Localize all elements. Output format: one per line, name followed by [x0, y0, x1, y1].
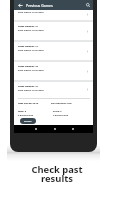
button[interactable]: Home [52, 126, 58, 132]
staticText: Previous Games [26, 3, 53, 8]
staticText: Wins: 6 [18, 110, 26, 113]
button[interactable]: Search [84, 1, 92, 9]
staticText: Date Played: 10/07/2020 [18, 49, 44, 52]
staticText: Date Played: 10/07/2020 [18, 11, 44, 14]
staticText: Check past results [31, 163, 83, 185]
button[interactable]: REVIEW [20, 118, 36, 124]
button[interactable]: Date Played: 10/07/2020 [14, 10, 93, 20]
staticText: Date Played: 10/07/2020 [18, 69, 44, 72]
button[interactable]: Game Number: 13 [14, 22, 93, 40]
staticText: Time Played: 20:10 [18, 102, 39, 105]
button[interactable]: Back [33, 126, 39, 132]
staticText: Game Number: 15 [18, 65, 38, 68]
button[interactable]: Back [16, 1, 24, 9]
staticText: 2 Rounds Won [18, 114, 34, 117]
staticText: Game Number: 13 [18, 25, 38, 28]
staticText: Score: 3 [53, 110, 62, 113]
button[interactable]: Game Number: 14 [14, 42, 93, 60]
staticText: Game Number: 16 [18, 85, 38, 88]
button[interactable]: Recents [70, 126, 76, 132]
staticText: REVIEW [24, 120, 32, 123]
staticText: Date Played: 10/07/2020 [18, 89, 44, 92]
staticText: Play Duration: 0:15 [51, 102, 72, 105]
button[interactable]: Game Number: 15 [14, 62, 93, 80]
staticText: Game Number: 14 [18, 45, 38, 48]
staticText: 4 Rounds Won [53, 114, 69, 117]
staticText: Date Played: 10/07/2020 [18, 29, 44, 32]
